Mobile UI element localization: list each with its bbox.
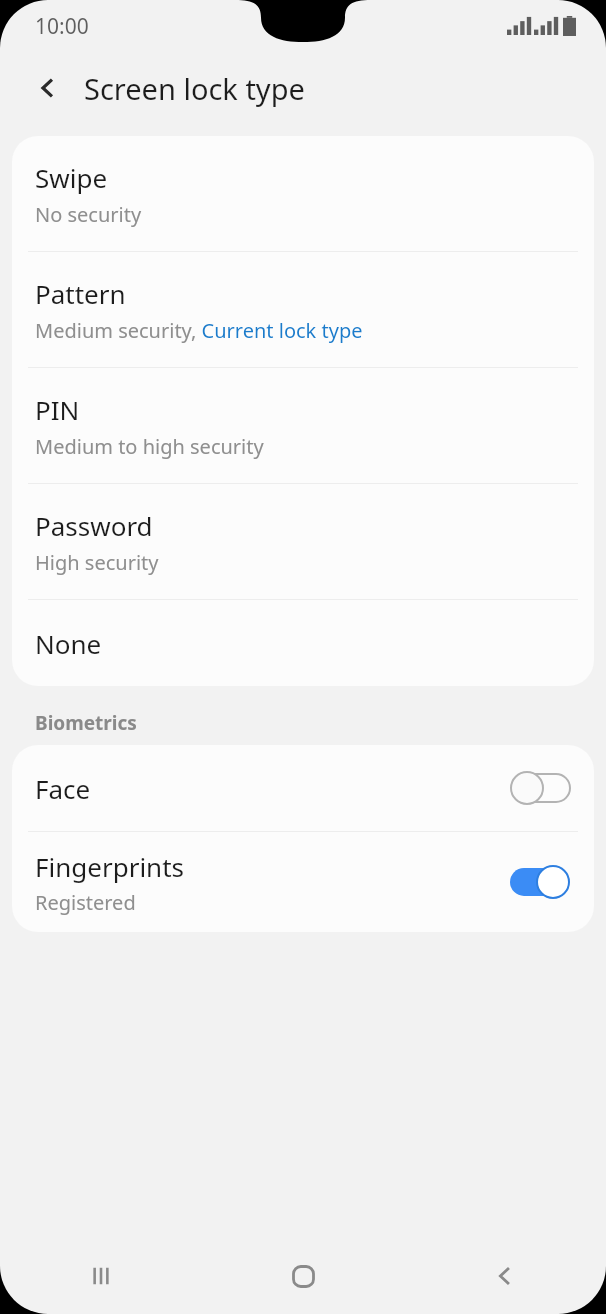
button[interactable]: PIN [12,368,594,483]
staticText: No security [35,201,142,228]
staticText: Screen lock type [84,69,305,108]
button[interactable]: Swipe [12,136,594,251]
staticText: Medium security, Current lock type [35,317,363,344]
staticText: Registered [35,889,136,916]
button[interactable]: Password [12,484,594,599]
button[interactable]: On [509,864,571,900]
staticText: Pattern [35,276,126,311]
button[interactable]: Home [271,1244,335,1308]
staticText: Swipe [35,160,108,195]
staticText: Password [35,508,153,543]
button[interactable]: Back [22,62,74,114]
staticText: PIN [35,392,80,427]
button[interactable]: Fingerprints [12,832,594,932]
button[interactable]: Pattern [12,252,594,367]
button[interactable]: Back [473,1244,537,1308]
button[interactable]: Off [509,770,571,806]
button[interactable]: None [12,600,594,686]
staticText: None [35,626,102,661]
staticText: Biometrics [35,710,137,736]
staticText: High security [35,549,159,576]
staticText: Fingerprints [35,849,185,884]
button[interactable]: Face [12,745,594,831]
staticText: Medium to high security [35,433,264,460]
staticText: 10:00 [35,12,89,41]
staticText: Face [35,771,91,806]
button[interactable]: Recent apps [69,1244,133,1308]
